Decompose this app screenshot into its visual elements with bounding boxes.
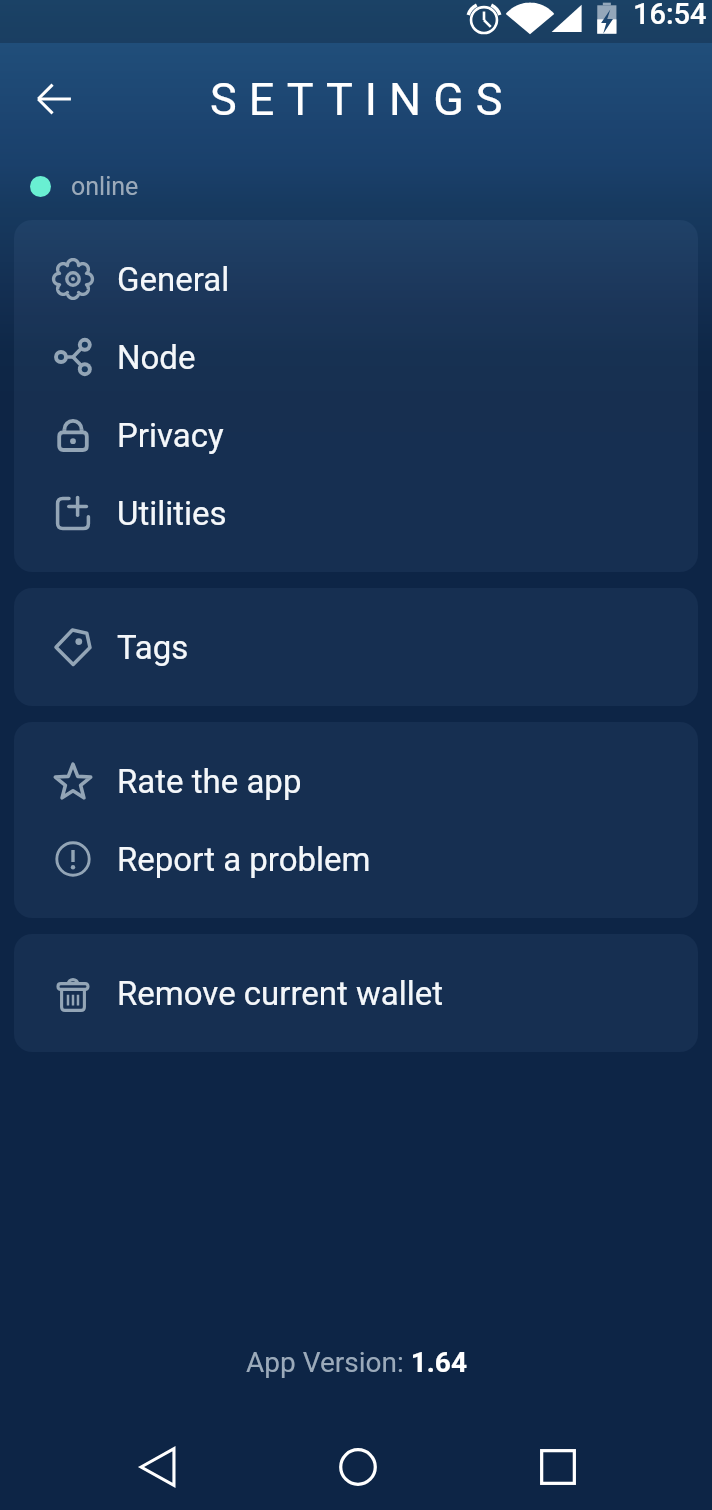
button[interactable]: Home xyxy=(326,1435,390,1499)
button[interactable]: General xyxy=(14,240,698,318)
staticText: Privacy xyxy=(117,416,224,455)
staticText: Report a problem xyxy=(117,840,371,879)
button[interactable]: Rate the app xyxy=(14,742,698,820)
staticText: 16:54 xyxy=(633,0,707,31)
button[interactable]: Utilities xyxy=(14,474,698,552)
button[interactable]: Remove current wallet xyxy=(14,954,698,1032)
staticText: App Version: 1.64 xyxy=(246,1346,467,1379)
button[interactable]: Tags xyxy=(14,608,698,686)
button[interactable]: Node xyxy=(14,318,698,396)
button[interactable]: Privacy xyxy=(14,396,698,474)
button[interactable]: Back xyxy=(126,1435,190,1499)
staticText: online xyxy=(71,172,139,201)
staticText: Remove current wallet xyxy=(117,974,444,1013)
staticText: Tags xyxy=(117,628,189,667)
staticText: SETTINGS xyxy=(210,73,515,126)
staticText: Utilities xyxy=(117,494,227,533)
button[interactable]: Recent apps xyxy=(526,1435,590,1499)
staticText: Rate the app xyxy=(117,762,302,801)
staticText: General xyxy=(117,260,230,299)
staticText: Node xyxy=(117,338,196,377)
button[interactable]: Report a problem xyxy=(14,820,698,898)
button[interactable]: Back xyxy=(28,73,80,125)
